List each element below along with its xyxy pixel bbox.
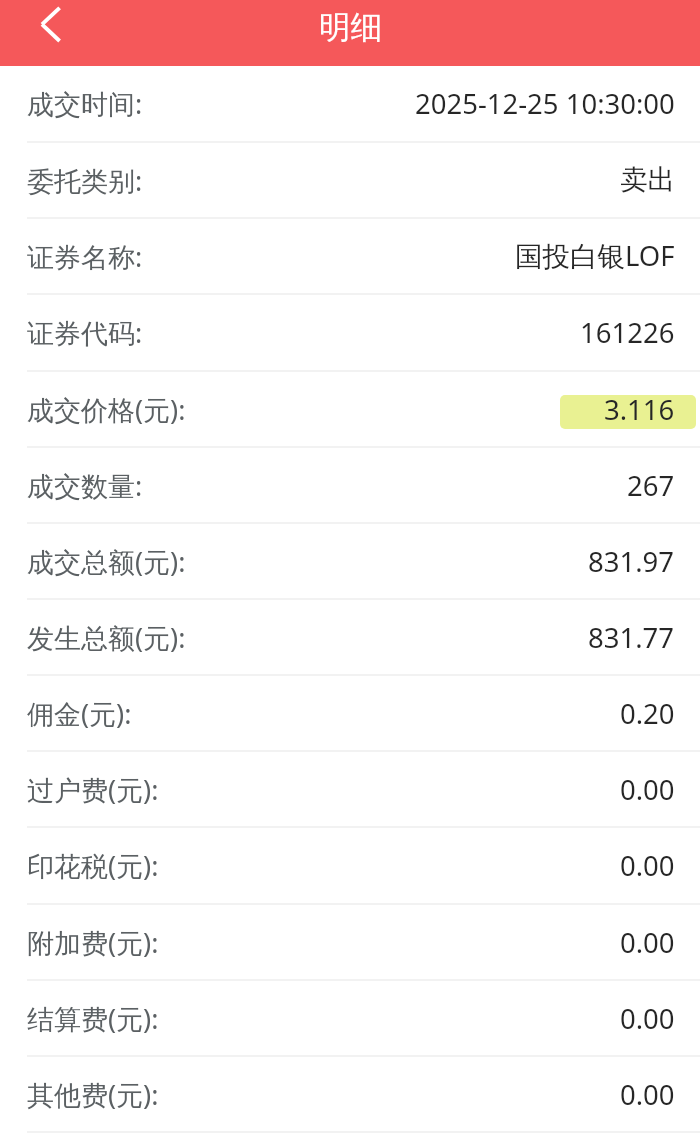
staticText: 印花税(元):: [27, 847, 159, 884]
staticText: 证券名称:: [27, 238, 143, 275]
staticText: 卖出: [620, 163, 675, 198]
button[interactable]: 印花税(元):: [0, 828, 700, 905]
button[interactable]: 委托类别:: [0, 143, 700, 219]
staticText: 成交时间:: [27, 85, 143, 122]
staticText: 明细: [319, 8, 382, 48]
staticText: 国投白银LOF: [515, 237, 675, 275]
button[interactable]: Back: [0, 0, 86, 66]
button[interactable]: 其他费(元):: [0, 1057, 700, 1133]
staticText: 0.00: [620, 771, 675, 808]
staticText: 267: [627, 467, 675, 504]
button[interactable]: 过户费(元):: [0, 752, 700, 828]
button[interactable]: 成交总额(元):: [0, 524, 700, 600]
staticText: 发生总额(元):: [27, 619, 186, 656]
staticText: 0.00: [620, 924, 675, 961]
button[interactable]: 成交价格(元):: [0, 372, 700, 448]
staticText: 3.116: [604, 391, 675, 428]
staticText: 佣金(元):: [27, 695, 132, 732]
button[interactable]: 佣金(元):: [0, 676, 700, 752]
staticText: 过户费(元):: [27, 771, 159, 808]
staticText: 结算费(元):: [27, 1000, 159, 1037]
staticText: 其他费(元):: [27, 1076, 159, 1113]
staticText: 附加费(元):: [27, 924, 159, 961]
button[interactable]: 证券名称:: [0, 219, 700, 295]
staticText: 0.00: [620, 1000, 675, 1037]
staticText: 161226: [580, 314, 675, 351]
staticText: 831.77: [588, 619, 675, 656]
staticText: 2025-12-25 10:30:00: [415, 85, 675, 122]
staticText: 证券代码:: [27, 314, 143, 351]
staticText: 0.20: [620, 695, 675, 732]
staticText: 成交总额(元):: [27, 543, 186, 580]
button[interactable]: 发生总额(元):: [0, 600, 700, 676]
button[interactable]: 成交时间:: [0, 66, 700, 143]
staticText: 成交价格(元):: [27, 391, 186, 428]
staticText: 0.00: [620, 1076, 675, 1113]
staticText: 0.00: [620, 847, 675, 884]
staticText: 委托类别:: [27, 162, 143, 199]
button[interactable]: 证券代码:: [0, 295, 700, 372]
staticText: 831.97: [588, 543, 675, 580]
button[interactable]: 附加费(元):: [0, 905, 700, 981]
button[interactable]: 结算费(元):: [0, 981, 700, 1057]
staticText: 成交数量:: [27, 467, 143, 504]
button[interactable]: 成交数量:: [0, 448, 700, 524]
